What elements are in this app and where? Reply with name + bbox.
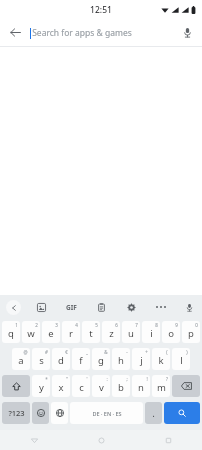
staticText: n [138, 381, 144, 394]
button[interactable]: 8 [142, 321, 160, 343]
staticText: 2 [35, 322, 38, 328]
staticText: * [45, 376, 48, 382]
button[interactable]: Settings [116, 295, 146, 319]
staticText: 1 [15, 322, 18, 328]
button[interactable]: € [52, 348, 70, 370]
staticText: x [58, 381, 64, 394]
button[interactable]: Emoji [32, 402, 49, 424]
button[interactable]: Backspace [172, 375, 200, 397]
staticText: o [168, 327, 174, 340]
staticText: DE · EN · ES [92, 410, 122, 417]
staticText: i [150, 327, 153, 340]
staticText: Search for apps & games [32, 27, 132, 39]
staticText: f [79, 354, 83, 367]
staticText: j [140, 354, 143, 367]
staticText: 9 [175, 322, 178, 328]
button[interactable]: ! [132, 375, 150, 397]
button[interactable]: ' [72, 375, 90, 397]
staticText: ? [166, 376, 168, 382]
staticText: m [157, 381, 166, 394]
staticText: + [145, 349, 148, 355]
button[interactable]: ( [152, 348, 170, 370]
button[interactable]: Search for apps & games [30, 19, 172, 46]
staticText: l [180, 354, 183, 367]
button[interactable]: * [32, 375, 50, 397]
button[interactable]: 9 [162, 321, 180, 343]
staticText: ( [166, 349, 168, 355]
staticText: d [58, 354, 64, 367]
button[interactable]: # [32, 348, 50, 370]
staticText: p [188, 327, 194, 340]
staticText: @ [23, 349, 28, 355]
button[interactable]: 2 [22, 321, 40, 343]
staticText: # [45, 349, 48, 355]
staticText: - [126, 349, 128, 355]
button[interactable]: Voice search [172, 19, 202, 46]
button[interactable]: Back [0, 19, 30, 46]
staticText: ) [186, 349, 188, 355]
button[interactable]: 6 [102, 321, 120, 343]
button[interactable]: ? [152, 375, 170, 397]
staticText: y [39, 381, 44, 394]
staticText: ; [126, 376, 128, 382]
button[interactable]: & [92, 348, 110, 370]
staticText: 8 [155, 322, 158, 328]
button[interactable]: Recent apps [135, 430, 202, 450]
staticText: 6 [115, 322, 118, 328]
staticText: ?123 [8, 408, 25, 418]
staticText: ' [86, 376, 88, 382]
staticText: 0 [195, 322, 198, 328]
button[interactable]: ?123 [2, 402, 30, 424]
staticText: 12:51 [90, 4, 112, 16]
button[interactable]: 3 [42, 321, 60, 343]
button[interactable]: 5 [82, 321, 100, 343]
button[interactable]: Shift [2, 375, 30, 397]
button[interactable]: Change language [51, 402, 68, 424]
staticText: b [118, 381, 124, 394]
staticText: c [79, 381, 84, 394]
button[interactable]: 0 [182, 321, 200, 343]
button[interactable]: ) [172, 348, 190, 370]
button[interactable]: Stickers [26, 295, 56, 319]
staticText: q [8, 327, 14, 340]
button[interactable]: Search [164, 402, 200, 424]
button[interactable]: GIF [56, 295, 86, 319]
staticText: w [27, 327, 35, 340]
staticText: a [18, 354, 24, 367]
staticText: t [89, 327, 93, 340]
button[interactable]: : [92, 375, 110, 397]
staticText: v [99, 381, 104, 394]
button[interactable]: - [112, 348, 130, 370]
button[interactable]: + [132, 348, 150, 370]
staticText: r [69, 327, 73, 340]
button[interactable]: Voice input [176, 295, 202, 319]
staticText: & [104, 349, 108, 355]
button[interactable]: 1 [2, 321, 20, 343]
staticText: " [66, 376, 68, 382]
staticText: k [158, 354, 164, 367]
staticText: . [152, 408, 155, 419]
button[interactable]: . [145, 402, 162, 424]
button[interactable]: @ [12, 348, 30, 370]
button[interactable]: _ [72, 348, 90, 370]
staticText: s [39, 354, 44, 367]
staticText: 5 [95, 322, 98, 328]
staticText: : [106, 376, 108, 382]
button[interactable]: More options [146, 295, 176, 319]
staticText: e [48, 327, 54, 340]
staticText: g [98, 354, 104, 367]
staticText: 4 [75, 322, 78, 328]
button[interactable]: 4 [62, 321, 80, 343]
staticText: ! [146, 376, 148, 382]
button[interactable]: " [52, 375, 70, 397]
staticText: u [128, 327, 134, 340]
button[interactable]: Expand toolbar [0, 295, 26, 319]
staticText: € [65, 349, 68, 355]
staticText: 7 [135, 322, 138, 328]
button[interactable]: 7 [122, 321, 140, 343]
button[interactable]: ; [112, 375, 130, 397]
button[interactable]: DE · EN · ES [70, 402, 143, 424]
button[interactable]: Clipboard [86, 295, 116, 319]
